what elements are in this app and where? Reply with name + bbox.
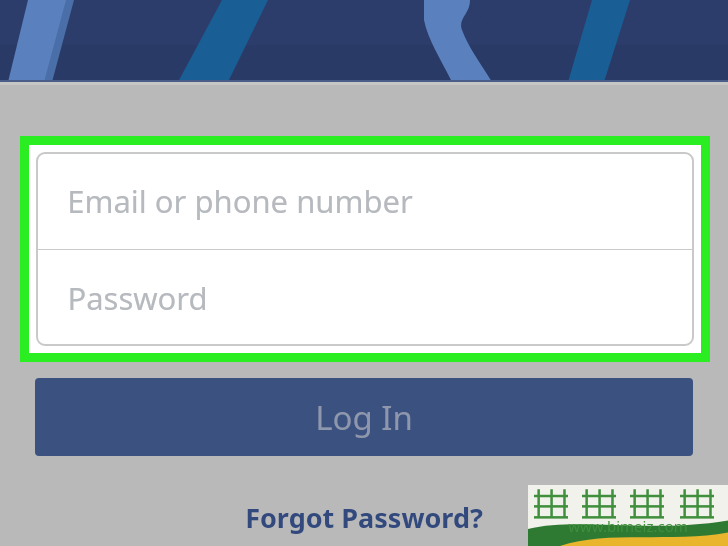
- staticText: Password: [67, 277, 208, 319]
- button[interactable]: Email or phone number: [37, 153, 693, 249]
- staticText: www.bimeiz.com: [568, 516, 688, 536]
- button[interactable]: Forgot Password?: [0, 494, 728, 540]
- staticText: Email or phone number: [67, 180, 413, 222]
- button[interactable]: Log In: [35, 378, 693, 456]
- button[interactable]: Password: [37, 250, 693, 345]
- staticText: Log In: [315, 395, 413, 440]
- staticText: Forgot Password?: [245, 499, 483, 536]
